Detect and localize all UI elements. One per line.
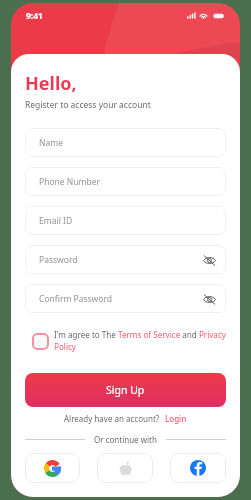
staticText: Or continue with <box>94 434 157 445</box>
staticText: Phone Number <box>39 176 100 188</box>
button[interactable]: Sign in with Apple <box>97 453 153 483</box>
staticText: Already have an account? <box>64 413 160 424</box>
staticText: Register to access your account <box>25 99 151 111</box>
staticText: Login <box>165 413 187 424</box>
button[interactable]: Sign in with Google <box>25 453 80 483</box>
button[interactable]: Phone Number <box>25 167 226 196</box>
staticText: I'm agree to The Terms of Service and Pr… <box>54 329 226 353</box>
staticText: Name <box>39 137 63 149</box>
staticText: Sign Up <box>106 383 145 397</box>
button[interactable]: I'm agree to The Terms of Service and Pr… <box>32 329 226 353</box>
staticText: Confirm Password <box>39 293 112 305</box>
other: Show password <box>202 292 216 306</box>
staticText: 9:41 <box>26 10 43 22</box>
button[interactable]: Email ID <box>25 206 226 235</box>
button[interactable]: Confirm Password <box>25 284 226 313</box>
other: Show password <box>202 253 216 267</box>
button[interactable]: Password <box>25 245 226 274</box>
button[interactable]: Sign in with Facebook <box>170 453 226 483</box>
staticText: Email ID <box>39 215 73 227</box>
staticText: Password <box>39 254 78 266</box>
staticText: Hello, <box>25 71 77 96</box>
button[interactable]: Sign Up <box>25 373 226 407</box>
button[interactable]: Login <box>165 413 187 424</box>
button[interactable]: Name <box>25 128 226 157</box>
